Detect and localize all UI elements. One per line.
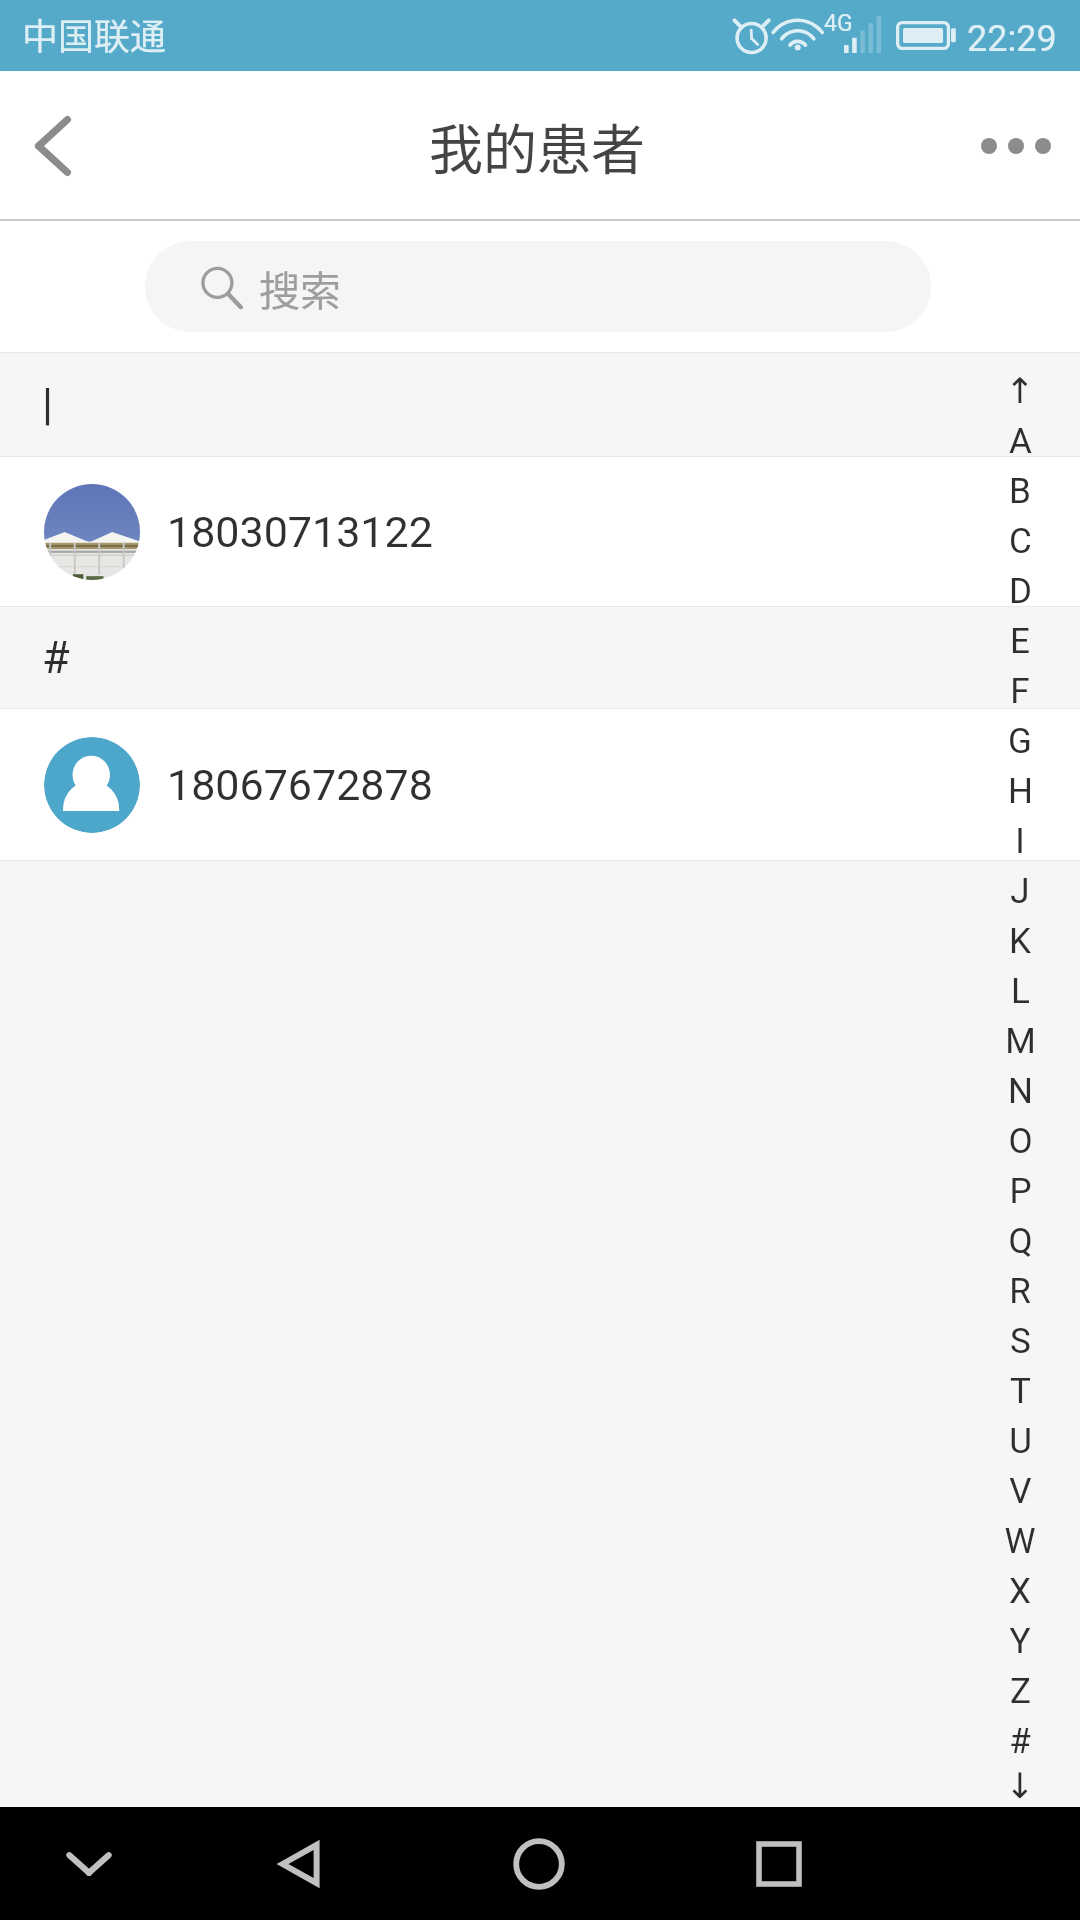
staticText: Q (1008, 1221, 1033, 1262)
staticText: A (1009, 421, 1032, 462)
button[interactable]: 18030713122 (0, 457, 1080, 606)
staticText: I (1015, 821, 1025, 862)
button[interactable]: Hide keyboard (29, 1807, 149, 1920)
staticText: # (1009, 1721, 1031, 1762)
staticText: ↓ (1005, 1766, 1035, 1807)
staticText: L (1011, 971, 1030, 1012)
staticText: T (1010, 1371, 1031, 1412)
button[interactable]: Back (0, 71, 124, 221)
staticText: N (1008, 1071, 1033, 1112)
staticText: S (1010, 1321, 1031, 1362)
staticText: W (1004, 1521, 1036, 1562)
staticText: U (1009, 1421, 1032, 1462)
staticText: C (1009, 521, 1032, 562)
staticText: F (1010, 671, 1030, 712)
staticText: | (42, 378, 53, 431)
staticText: J (1010, 871, 1030, 912)
staticText: Y (1009, 1621, 1031, 1662)
staticText: 我的患者 (429, 107, 645, 185)
staticText: O (1008, 1121, 1033, 1162)
staticText: H (1008, 771, 1033, 812)
button[interactable]: Alphabet index (960, 352, 1080, 1807)
button[interactable]: Back (241, 1807, 361, 1920)
staticText: ↑ (1005, 371, 1035, 412)
staticText: G (1008, 721, 1032, 762)
staticText: 18030713122 (167, 507, 433, 557)
staticText: D (1009, 571, 1032, 612)
staticText: # (42, 631, 70, 684)
staticText: M (1005, 1021, 1036, 1062)
staticText: X (1009, 1571, 1031, 1612)
staticText: P (1009, 1171, 1032, 1212)
staticText: 搜索 (259, 258, 341, 317)
staticText: K (1009, 921, 1031, 962)
staticText: 4G (824, 10, 853, 37)
button[interactable]: 搜索 (145, 241, 931, 332)
staticText: V (1009, 1471, 1032, 1512)
staticText: E (1010, 621, 1030, 662)
staticText: 中国联通 (22, 8, 167, 60)
staticText: 22:29 (967, 18, 1057, 60)
button[interactable]: Home (479, 1807, 599, 1920)
staticText: Z (1010, 1671, 1031, 1712)
staticText: B (1009, 471, 1031, 512)
staticText: R (1009, 1271, 1031, 1312)
button[interactable]: Recent apps (719, 1807, 839, 1920)
button[interactable]: 18067672878 (0, 709, 1080, 860)
staticText: 18067672878 (167, 760, 433, 810)
button[interactable]: More options (970, 71, 1080, 221)
